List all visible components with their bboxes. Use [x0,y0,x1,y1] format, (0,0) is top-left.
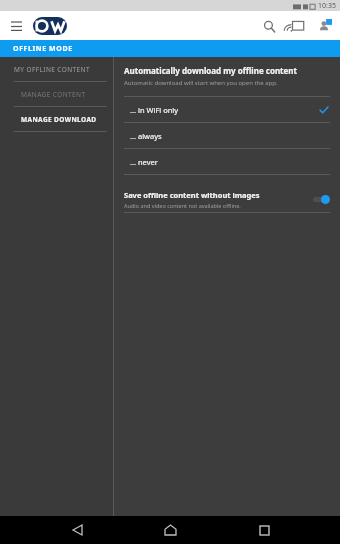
button[interactable]: Back [60,516,94,544]
staticText: MY OFFLINE CONTENT [14,65,90,74]
staticText: MANAGE CONTENT [21,90,86,99]
button[interactable]: Open navigation menu [8,18,24,34]
staticText: ... never [130,157,158,167]
staticText: ... in WiFi only [130,105,179,115]
button[interactable]: MY OFFLINE CONTENT [0,57,113,81]
staticText: Automatically download my offline conten… [124,65,298,76]
staticText: ... always [130,131,162,141]
staticText: Audio and video content not available of… [124,202,241,209]
button[interactable]: ... always [114,123,340,148]
button[interactable]: Save offline content without images togg… [312,194,330,205]
button[interactable]: Search [260,17,278,35]
button[interactable]: Home [153,516,187,544]
button[interactable]: ... never [114,149,340,174]
staticText: MANAGE DOWNLOAD [21,115,97,124]
button[interactable]: MANAGE DOWNLOAD [0,107,113,131]
button[interactable]: DW home [33,17,67,35]
button[interactable]: Recent apps [247,516,281,544]
staticText: Automatic download will start when you o… [124,79,278,87]
button[interactable]: ... in WiFi only [114,97,340,122]
staticText: OFFLINE MODE [13,44,73,54]
staticText: 10:35 [318,1,336,11]
button[interactable]: MANAGE CONTENT [0,82,113,106]
button[interactable]: Account [316,17,334,35]
button[interactable]: Cast [288,17,306,35]
button[interactable]: Save offline content without images [114,186,340,212]
button[interactable]: OFFLINE MODE [0,40,340,57]
staticText: Save offline content without images [124,190,260,200]
